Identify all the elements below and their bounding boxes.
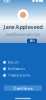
staticText: Continue (13, 85, 32, 91)
staticText: jane@example.com (5, 31, 40, 37)
staticText: Edit (29, 39, 34, 43)
button[interactable]: Edit (27, 39, 37, 43)
staticText: Jane Appleseed (3, 23, 42, 30)
staticText: Notifications (7, 67, 24, 71)
staticText: 9:41 (3, 0, 10, 3)
staticText: Privacy & Security (7, 74, 29, 77)
button[interactable]: Account (3, 60, 43, 64)
button[interactable]: Continue (4, 85, 42, 91)
button[interactable]: Notifications (3, 67, 43, 71)
staticText: Account (7, 61, 18, 64)
button[interactable]: Privacy & Security (3, 73, 43, 77)
